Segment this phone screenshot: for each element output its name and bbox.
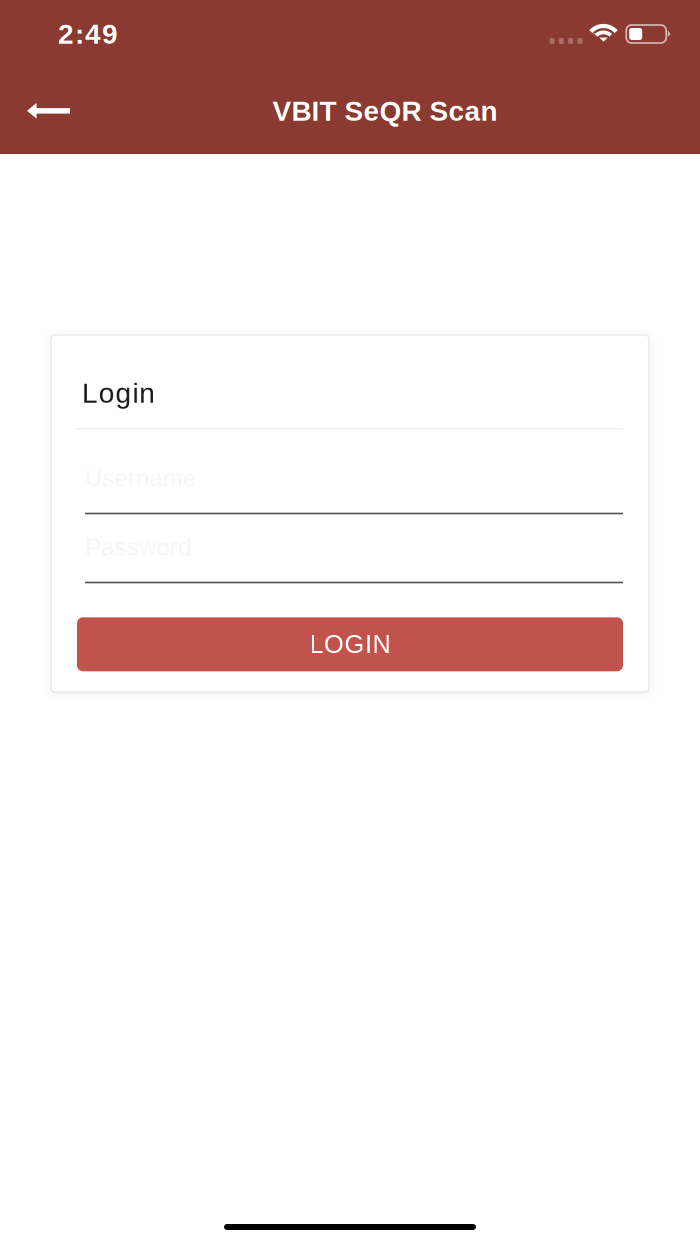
staticText: LOGIN	[309, 630, 390, 658]
button[interactable]: LOGIN	[77, 617, 623, 671]
button[interactable]: Back	[0, 82, 90, 140]
staticText: Login	[82, 377, 155, 409]
staticText: VBIT SeQR Scan	[272, 95, 497, 127]
staticText: Password	[85, 534, 191, 561]
button[interactable]: Username	[77, 465, 623, 514]
button[interactable]: Password	[77, 534, 623, 583]
staticText: Username	[85, 465, 196, 492]
staticText: 2:49	[58, 18, 118, 50]
